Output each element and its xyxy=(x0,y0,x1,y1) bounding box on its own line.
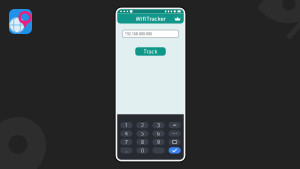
button[interactable]: 3 xyxy=(152,122,165,128)
button[interactable]: Track xyxy=(135,47,166,56)
button[interactable]: 6 xyxy=(152,130,165,137)
staticText: 4 xyxy=(125,130,128,137)
staticText: Track xyxy=(143,48,157,55)
staticText: 8 xyxy=(141,138,144,145)
staticText: 9 xyxy=(157,138,160,145)
staticText: 192.168.000.000 xyxy=(125,31,152,36)
staticText: Wifi Tracker xyxy=(135,15,165,22)
button[interactable] xyxy=(152,147,165,153)
button[interactable]: , xyxy=(120,147,132,153)
button[interactable]: 5 xyxy=(136,130,148,137)
staticText: 7 xyxy=(125,138,128,145)
staticText: 3 xyxy=(157,122,160,129)
staticText: 1 xyxy=(125,122,128,129)
button[interactable]: 1 xyxy=(120,122,132,128)
button[interactable]: Upgrade to premium xyxy=(173,14,182,23)
staticText: , xyxy=(126,147,127,154)
staticText: 2 xyxy=(141,122,144,129)
button[interactable]: 2 xyxy=(136,122,148,128)
button[interactable]: 8 xyxy=(136,139,148,145)
staticText: 0 xyxy=(141,147,144,154)
button[interactable]: 9 xyxy=(152,139,165,145)
button[interactable] xyxy=(169,122,181,128)
button[interactable] xyxy=(169,139,181,145)
button[interactable]: 0 xyxy=(136,147,148,153)
button[interactable] xyxy=(169,130,181,137)
button[interactable]: 7 xyxy=(120,139,132,145)
staticText: 6 xyxy=(157,130,160,137)
button[interactable] xyxy=(169,147,181,153)
button[interactable]: 4 xyxy=(120,130,132,137)
button[interactable]: 192.168.000.000 xyxy=(122,30,179,37)
staticText: 5 xyxy=(141,130,144,137)
